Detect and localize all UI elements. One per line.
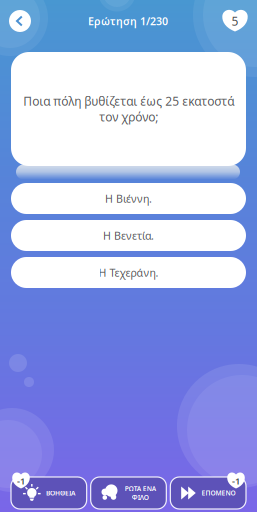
staticText: -1 xyxy=(17,475,25,487)
staticText: Ποια πόλη βυθίζεται έως 25 εκατοστά τον … xyxy=(23,93,234,125)
button[interactable]: Lives remaining: 5 xyxy=(219,5,251,35)
staticText: -1 xyxy=(232,475,240,487)
staticText: Η Βιέννη. xyxy=(105,191,152,206)
staticText: Ερώτηση 1/230 xyxy=(88,14,168,28)
staticText: 5 xyxy=(231,13,238,29)
button[interactable]: Η Τεχεράνη. xyxy=(11,257,246,288)
button[interactable]: ΡΩΤΑ ΕΝΑ ΦΙΛΟ xyxy=(91,477,166,509)
staticText: ΡΩΤΑ ΕΝΑ ΦΙΛΟ xyxy=(124,484,155,502)
button[interactable]: Η Βενετία. xyxy=(11,220,246,251)
staticText: ΒΟΗΘΕΙΑ xyxy=(46,489,75,497)
staticText: Η Τεχεράνη. xyxy=(98,265,158,280)
staticText: Η Βενετία. xyxy=(103,228,154,243)
button[interactable]: Back xyxy=(4,5,36,37)
button[interactable]: ΒΟΗΘΕΙΑ xyxy=(11,477,87,509)
button[interactable]: Η Βιέννη. xyxy=(11,183,246,214)
staticText: ΕΠΟΜΕΝΟ xyxy=(201,489,235,497)
button[interactable]: ΕΠΟΜΕΝΟ xyxy=(170,477,246,509)
